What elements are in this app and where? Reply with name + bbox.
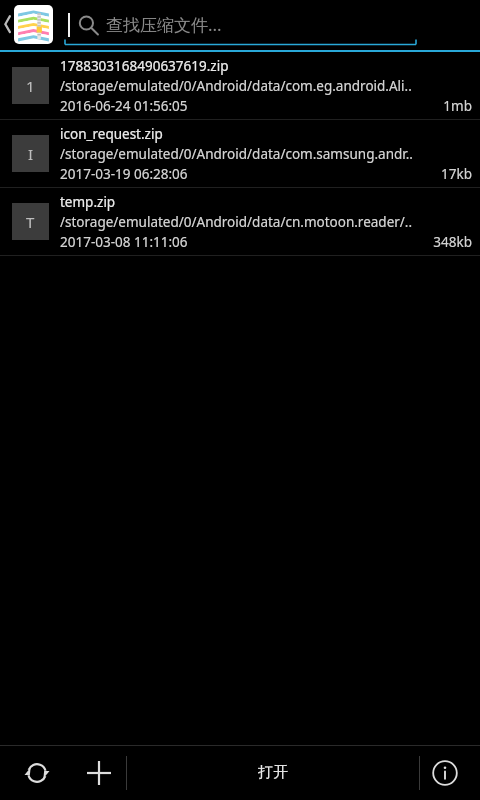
button[interactable]: 查找压缩文件...	[62, 2, 418, 48]
staticText: 2017-03-08 11:11:06	[60, 233, 188, 251]
staticText: 2016-06-24 01:56:05	[60, 97, 188, 115]
button[interactable]: T	[0, 188, 480, 255]
button[interactable]: I	[0, 120, 480, 187]
staticText: temp.zip	[60, 193, 116, 211]
staticText: 1mb	[443, 97, 472, 115]
staticText: 1	[26, 76, 35, 96]
staticText: 2017-03-19 06:28:06	[60, 165, 188, 183]
staticText: icon_request.zip	[60, 125, 163, 143]
staticText: /storage/emulated/0/Android/data/com.sam…	[60, 145, 413, 163]
button[interactable]: Back	[0, 3, 16, 49]
staticText: 348kb	[433, 233, 472, 251]
staticText: T	[26, 212, 35, 232]
button[interactable]: 1	[0, 52, 480, 119]
staticText: /storage/emulated/0/Android/data/com.eg.…	[60, 77, 412, 95]
button[interactable]: 打开	[127, 745, 419, 800]
staticText: 1788303168490637619.zip	[60, 57, 229, 75]
button[interactable]: Add	[76, 750, 122, 796]
staticText: 打开	[258, 763, 288, 782]
staticText: I	[28, 144, 34, 164]
button[interactable]: App icon	[14, 5, 53, 44]
button[interactable]: Refresh	[14, 750, 60, 796]
staticText: 查找压缩文件...	[106, 13, 222, 36]
button[interactable]: Info	[420, 748, 470, 798]
staticText: 17kb	[441, 165, 472, 183]
staticText: /storage/emulated/0/Android/data/cn.moto…	[60, 213, 413, 231]
